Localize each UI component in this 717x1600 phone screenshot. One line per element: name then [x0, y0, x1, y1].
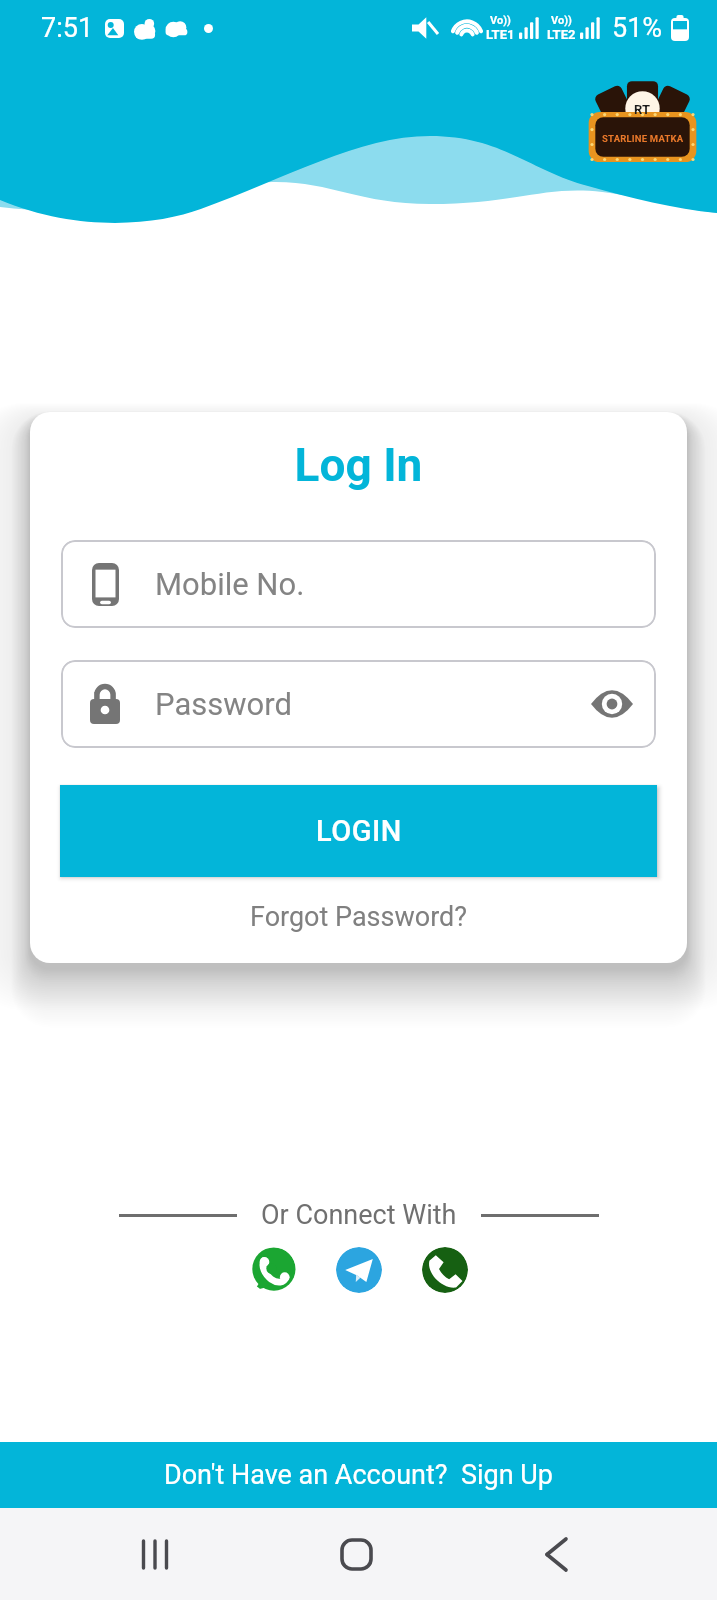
staticText: Mobile No.: [155, 566, 305, 602]
staticText: Vo)): [490, 14, 511, 27]
staticText: LTE1: [486, 27, 515, 42]
staticText: Log In: [30, 438, 687, 492]
staticText: RT: [634, 102, 651, 117]
staticText: 51%: [612, 12, 663, 44]
button[interactable]: Forgot Password?: [246, 897, 472, 937]
staticText: Vo)): [551, 14, 572, 27]
staticText: LTE2: [547, 27, 576, 42]
button[interactable]: Home: [310, 1508, 402, 1600]
button[interactable]: Back: [510, 1508, 602, 1600]
staticText: LOGIN: [316, 814, 402, 848]
button[interactable]: Password: [61, 660, 656, 748]
button[interactable]: LOGIN: [60, 785, 657, 877]
button[interactable]: Mobile No.: [61, 540, 656, 628]
button[interactable]: Don't Have an Account? Sign Up: [0, 1442, 717, 1508]
staticText: Or Connect With: [261, 1199, 457, 1231]
staticText: STARLINE MATKA: [602, 133, 684, 144]
staticText: Don't Have an Account? Sign Up: [164, 1459, 553, 1491]
button[interactable]: Telegram: [336, 1247, 382, 1293]
staticText: Password: [155, 686, 292, 722]
button[interactable]: Recents: [109, 1508, 201, 1600]
button[interactable]: Call: [422, 1247, 468, 1293]
button[interactable]: Show password: [588, 680, 636, 728]
staticText: 7:51: [41, 12, 94, 44]
button[interactable]: WhatsApp: [250, 1247, 296, 1293]
